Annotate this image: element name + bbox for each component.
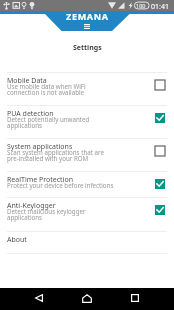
staticText: Detect malicious keylogger applications bbox=[7, 207, 86, 222]
button[interactable]: RealTime Protection bbox=[0, 172, 174, 197]
staticText: Settings bbox=[73, 43, 102, 53]
staticText: PUA detection bbox=[7, 109, 54, 119]
staticText: 100 bbox=[136, 2, 146, 9]
staticText: About bbox=[7, 235, 27, 245]
staticText: Use mobile data when WiFi connection is … bbox=[7, 82, 86, 97]
staticText: Scan system applications that are pre-in… bbox=[7, 148, 104, 163]
button[interactable]: PUA detection bbox=[0, 106, 174, 138]
button[interactable]: Recent apps bbox=[124, 288, 146, 310]
button[interactable]: System applications bbox=[0, 139, 174, 171]
staticText: System applications bbox=[7, 142, 73, 152]
staticText: ZEMANA bbox=[66, 10, 109, 22]
staticText: Protect your device before infections bbox=[7, 181, 114, 189]
button[interactable]: Home bbox=[76, 288, 98, 310]
button[interactable]: Mobile Data bbox=[0, 73, 174, 105]
staticText: RealTime Protection bbox=[7, 175, 73, 185]
button[interactable]: About bbox=[0, 232, 174, 253]
staticText: Detect potentially unwanted applications bbox=[7, 115, 90, 130]
staticText: Mobile Data bbox=[7, 76, 47, 86]
staticText: Anti-Keylogger bbox=[7, 201, 56, 211]
button[interactable]: Back bbox=[28, 288, 50, 310]
staticText: 01:41 bbox=[151, 2, 169, 12]
button[interactable]: Anti-Keylogger bbox=[0, 198, 174, 231]
